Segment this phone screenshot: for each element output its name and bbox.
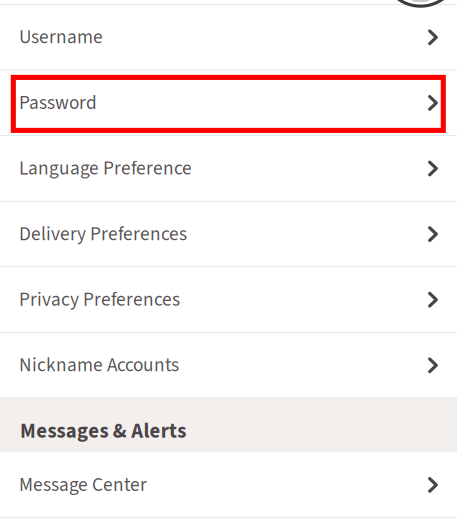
button[interactable]: Message Center bbox=[0, 453, 457, 517]
staticText: Delivery Preferences bbox=[19, 220, 187, 248]
button[interactable]: Language Preference bbox=[0, 136, 457, 201]
button[interactable]: Password bbox=[0, 71, 457, 135]
staticText: Message Center bbox=[19, 471, 147, 499]
staticText: Nickname Accounts bbox=[19, 351, 179, 379]
button[interactable]: Username bbox=[0, 5, 457, 70]
button[interactable]: Delivery Preferences bbox=[0, 202, 457, 266]
staticText: Language Preference bbox=[19, 155, 192, 182]
staticText: Username bbox=[19, 23, 103, 51]
staticText: Privacy Preferences bbox=[19, 286, 180, 313]
button[interactable]: Nickname Accounts bbox=[0, 333, 457, 398]
button[interactable]: Privacy Preferences bbox=[0, 267, 457, 332]
button[interactable]: Account bbox=[382, 0, 457, 6]
staticText: Password bbox=[19, 89, 97, 117]
staticText: Messages & Alerts bbox=[20, 417, 186, 446]
